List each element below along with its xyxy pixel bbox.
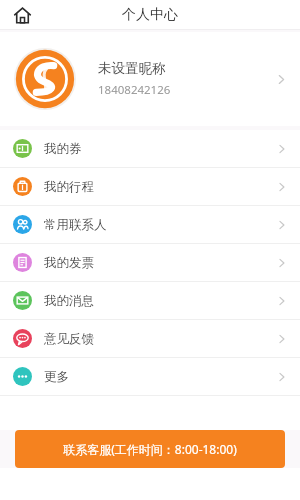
staticText: 我的行程 [44,179,276,195]
staticText: 未设置昵称 [98,60,166,77]
button[interactable]: 常用联系人 [0,206,300,243]
button[interactable]: 联系客服(工作时间：8:00-18:00) [15,430,285,468]
button[interactable]: 更多 [0,358,300,395]
button[interactable]: 我的券 [0,130,300,167]
staticText: 我的发票 [44,255,276,271]
staticText: 我的券 [44,141,276,157]
staticText: 更多 [44,369,276,385]
button[interactable]: 我的消息 [0,282,300,319]
button[interactable]: 未设置昵称 [0,32,300,126]
staticText: 我的消息 [44,293,276,309]
staticText: 18408242126 [98,82,171,98]
button[interactable]: 意见反馈 [0,320,300,357]
staticText: 个人中心 [122,6,178,24]
button[interactable]: 我的发票 [0,244,300,281]
staticText: 常用联系人 [44,217,276,233]
button[interactable]: 我的行程 [0,168,300,205]
button[interactable]: Home [8,1,36,29]
staticText: 联系客服(工作时间：8:00-18:00) [63,441,237,457]
staticText: 意见反馈 [44,331,276,347]
